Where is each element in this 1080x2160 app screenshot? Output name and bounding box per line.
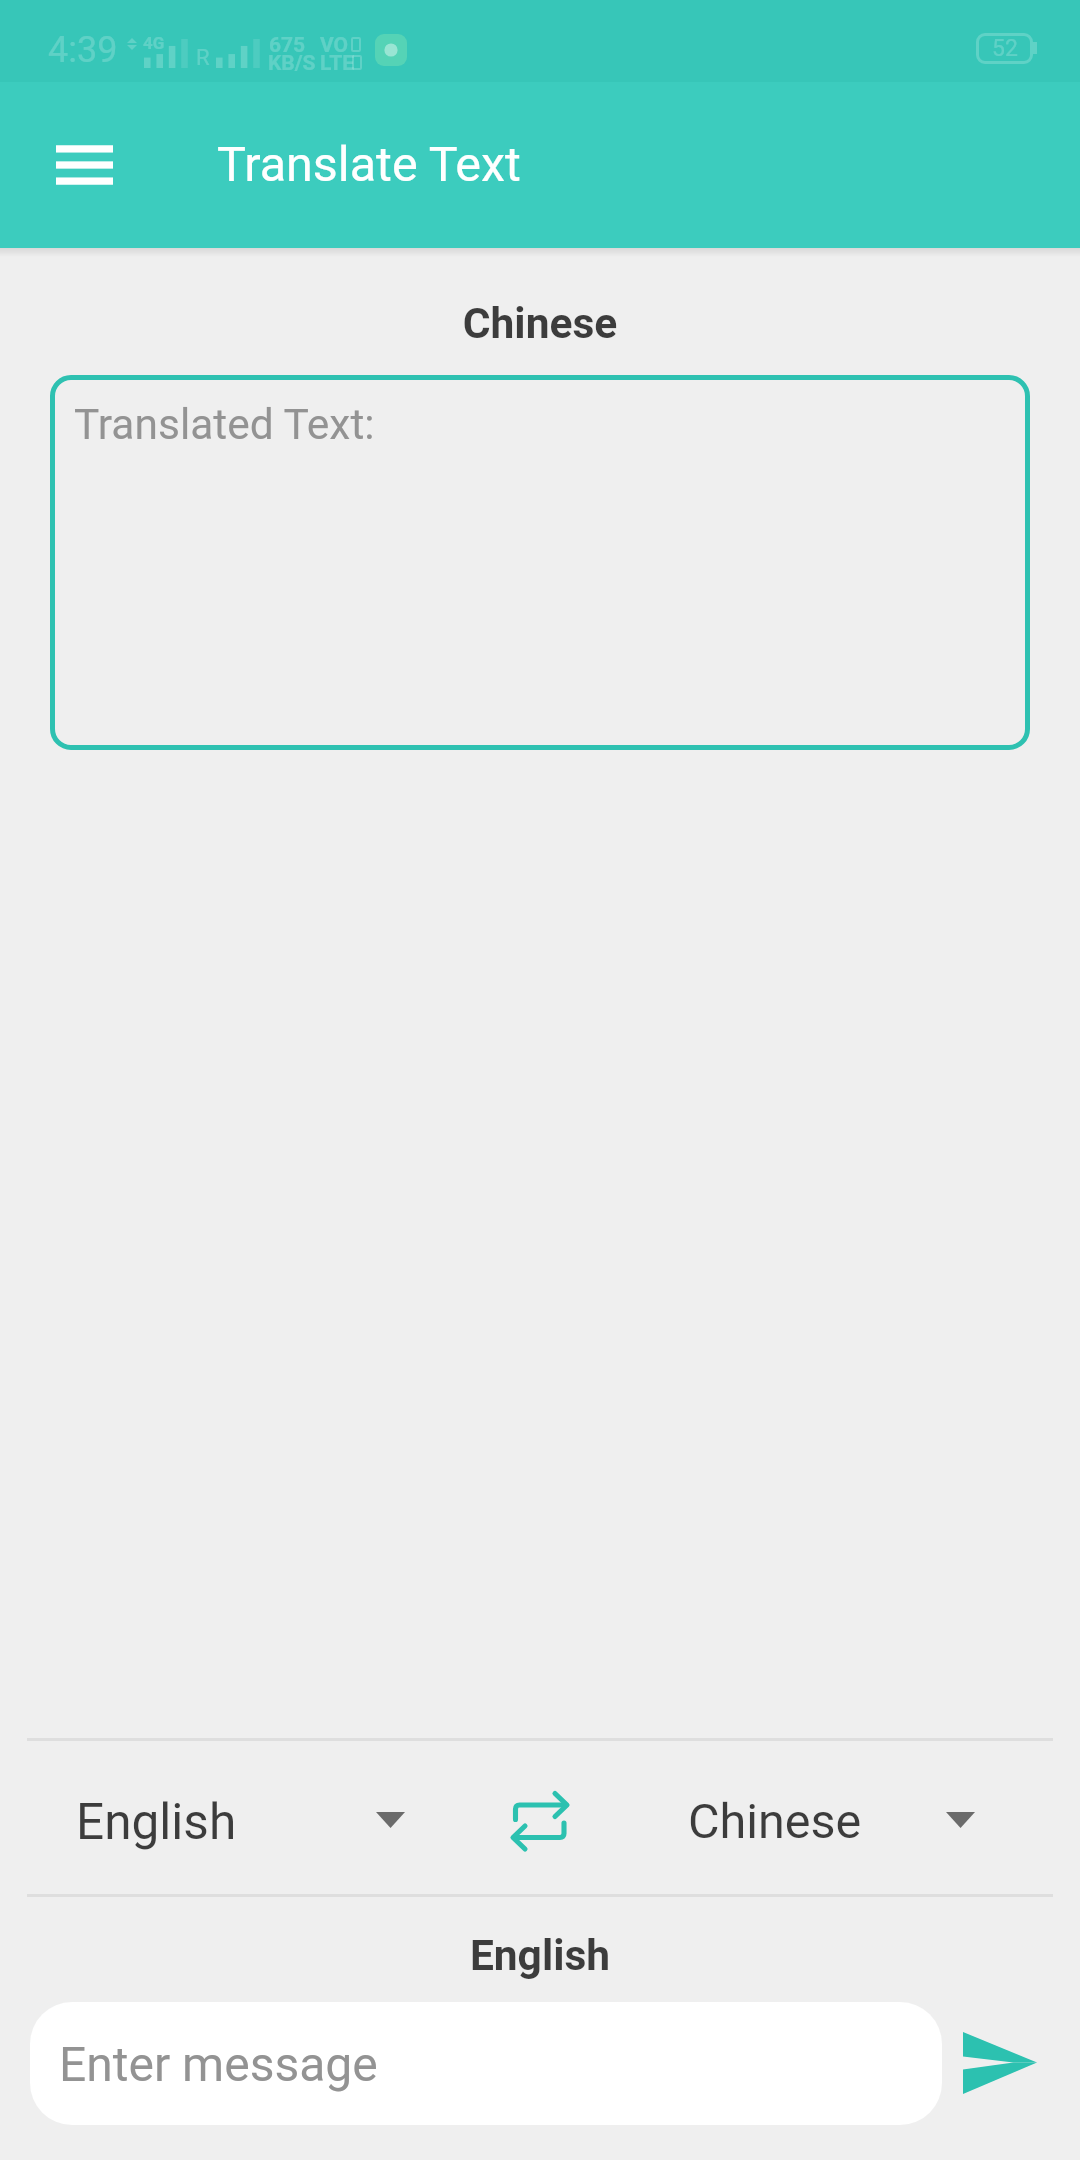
- button[interactable]: Send: [945, 2007, 1055, 2119]
- staticText: Translate Text: [217, 136, 521, 193]
- staticText: English: [76, 1793, 237, 1851]
- staticText: 4:39: [48, 29, 118, 71]
- staticText: Translated Text:: [74, 400, 375, 450]
- staticText: LTE: [320, 51, 355, 76]
- staticText: Chinese: [688, 1793, 862, 1850]
- staticText: 52: [992, 35, 1018, 62]
- staticText: Chinese: [0, 299, 1080, 349]
- staticText: KB/S: [268, 51, 316, 76]
- button[interactable]: Translated Text:: [50, 375, 1030, 750]
- button[interactable]: Open navigation menu: [29, 113, 139, 217]
- staticText: English: [0, 1931, 1080, 1981]
- button[interactable]: Chinese: [640, 1760, 1040, 1878]
- button[interactable]: Swap languages: [486, 1760, 594, 1878]
- staticText: R: [196, 45, 210, 71]
- button[interactable]: English: [28, 1760, 428, 1878]
- staticText: Enter message: [59, 2036, 378, 2092]
- staticText: 675: [269, 33, 306, 58]
- button[interactable]: Enter message: [30, 2002, 942, 2125]
- staticText: 4G: [143, 33, 165, 53]
- staticText: VO: [320, 33, 349, 58]
